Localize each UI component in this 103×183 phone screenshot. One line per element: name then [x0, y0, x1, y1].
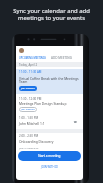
button[interactable]: ADD MEETING	[51, 56, 72, 60]
staticText: Meetings Plan Design Standup	[19, 101, 67, 105]
button[interactable]: 1:00 - 1:30 PM	[16, 115, 83, 128]
staticText: Onboarding Discovery	[19, 139, 54, 143]
staticText: 2:00 - 2:30 PM	[19, 134, 39, 138]
button[interactable]: Account	[19, 48, 24, 53]
staticText: 11:00 - 11:30 AM	[19, 70, 42, 74]
staticText: UPCOMING MEETINGS	[19, 56, 46, 59]
staticText: Join meeting	[21, 87, 35, 90]
staticText: Today, April 2	[19, 63, 38, 67]
staticText: JOIN WITH ID	[41, 165, 58, 169]
other: Video call	[74, 120, 78, 124]
button[interactable]: 11:30 - 12:00 PM	[16, 95, 83, 114]
staticText: 11:30 - 12:00 PM	[19, 97, 42, 101]
staticText: Virtual Coffee Break with the Meetings T…	[19, 76, 79, 84]
button[interactable]: JOIN WITH ID	[41, 165, 58, 169]
button[interactable]: 2:00 - 2:30 PM	[16, 133, 83, 146]
staticText: John Mitchell 1:1	[19, 121, 45, 125]
staticText: JOIN A MEETING	[19, 146, 39, 149]
button[interactable]: UPCOMING MEETINGS	[19, 56, 46, 59]
button[interactable]: Join meeting	[21, 107, 35, 112]
button[interactable]: 11:00 - 11:30 AM	[16, 69, 83, 94]
button[interactable]: Join meeting	[21, 86, 35, 91]
button[interactable]: Start a meeting	[18, 151, 81, 161]
staticText: Join meeting	[21, 108, 35, 111]
staticText: Start a meeting	[38, 154, 61, 158]
staticText: ADD MEETING	[51, 56, 72, 60]
staticText: Sync your calendar and add meetings to y…	[0, 7, 103, 22]
staticText: 1:00 - 1:30 PM	[19, 116, 39, 120]
